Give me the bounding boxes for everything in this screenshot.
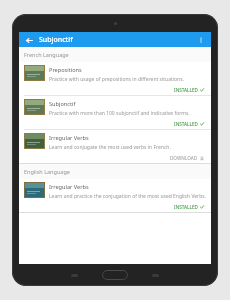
button[interactable]: INSTALLED bbox=[171, 86, 207, 94]
staticText: DOWNLOAD bbox=[170, 155, 198, 161]
button[interactable]: Prepositions bbox=[19, 62, 211, 95]
staticText: Irregular Verbs bbox=[49, 134, 89, 142]
button[interactable]: DOWNLOAD bbox=[167, 154, 207, 162]
staticText: Subjonctif bbox=[49, 100, 76, 108]
button[interactable]: INSTALLED bbox=[171, 120, 207, 128]
staticText: INSTALLED bbox=[174, 204, 198, 210]
staticText: French Language bbox=[24, 51, 69, 58]
button[interactable]: Subjonctif bbox=[19, 96, 211, 129]
staticText: Practice with more than 100 subjonctif a… bbox=[49, 110, 190, 117]
staticText: Practice with usage of prepositions in d… bbox=[49, 76, 184, 83]
staticText: Subjonctif bbox=[39, 35, 195, 45]
button[interactable]: More options bbox=[195, 34, 207, 46]
button[interactable]: Irregular Verbs bbox=[19, 179, 211, 212]
staticText: Learn and practice the conjugation of th… bbox=[49, 193, 206, 200]
staticText: Learn and conjugate the most used verbs … bbox=[49, 144, 171, 151]
staticText: Irregular Verbs bbox=[49, 183, 89, 191]
button[interactable]: Irregular Verbs bbox=[19, 130, 211, 163]
button[interactable]: Back bbox=[23, 34, 35, 46]
staticText: INSTALLED bbox=[174, 121, 198, 127]
staticText: English Language bbox=[24, 168, 70, 175]
staticText: Prepositions bbox=[49, 66, 82, 74]
staticText: INSTALLED bbox=[174, 87, 198, 93]
button[interactable]: INSTALLED bbox=[171, 203, 207, 211]
